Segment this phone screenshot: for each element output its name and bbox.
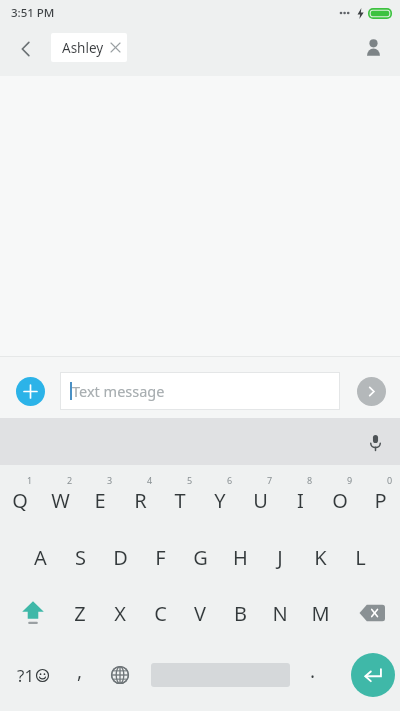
button[interactable]: M	[300, 590, 340, 636]
staticText: Q	[12, 487, 28, 514]
staticText: F	[155, 544, 166, 571]
button[interactable]: R	[120, 472, 160, 522]
button[interactable]: N	[260, 590, 300, 636]
staticText: 5	[187, 474, 193, 486]
button[interactable]: Back	[8, 31, 44, 67]
staticText: N	[272, 600, 288, 627]
staticText: 0	[387, 474, 393, 486]
staticText: H	[233, 544, 248, 571]
button[interactable]: I	[280, 472, 320, 522]
staticText: 8	[307, 474, 313, 486]
button[interactable]: Voice input	[358, 425, 392, 459]
staticText: O	[332, 487, 348, 514]
staticText: I	[297, 487, 304, 514]
staticText: U	[253, 487, 268, 514]
staticText: X	[114, 600, 126, 627]
staticText: ,	[77, 658, 83, 684]
staticText: 4	[147, 474, 153, 486]
button[interactable]: P	[360, 472, 400, 522]
button[interactable]: Y	[200, 472, 240, 522]
staticText: Ashley	[62, 39, 104, 57]
button[interactable]: L	[340, 534, 380, 580]
staticText: B	[234, 600, 247, 627]
button[interactable]: B	[220, 590, 260, 636]
staticText: M	[311, 600, 330, 627]
button[interactable]: Send	[357, 377, 386, 406]
staticText: Y	[214, 487, 226, 514]
staticText: V	[194, 600, 206, 627]
staticText: E	[94, 487, 106, 514]
button[interactable]: Add attachment	[16, 377, 45, 406]
button[interactable]: Backspace	[350, 590, 394, 636]
button[interactable]: Q	[0, 472, 40, 522]
button[interactable]: Enter	[351, 653, 395, 697]
button[interactable]: J	[260, 534, 300, 580]
staticText: 7	[267, 474, 273, 486]
staticText: D	[113, 544, 128, 571]
button[interactable]: .	[297, 653, 329, 697]
staticText: L	[355, 544, 366, 571]
button[interactable]: K	[300, 534, 340, 580]
button[interactable]: O	[320, 472, 360, 522]
staticText: G	[193, 544, 208, 571]
button[interactable]: F	[140, 534, 180, 580]
staticText: 9	[347, 474, 353, 486]
staticText: S	[75, 544, 86, 571]
staticText: Z	[74, 600, 86, 627]
button[interactable]: S	[60, 534, 100, 580]
staticText: 3	[107, 474, 113, 486]
staticText: R	[134, 487, 147, 514]
button[interactable]: D	[100, 534, 140, 580]
button[interactable]: W	[40, 472, 80, 522]
staticText: P	[374, 487, 387, 514]
button[interactable]: Text message	[60, 372, 340, 410]
button[interactable]: C	[140, 590, 180, 636]
staticText: A	[34, 544, 47, 571]
button[interactable]: Change language	[102, 653, 138, 697]
button[interactable]: Ashley	[51, 33, 127, 62]
button[interactable]: G	[180, 534, 220, 580]
button[interactable]: T	[160, 472, 200, 522]
staticText: C	[154, 600, 167, 627]
staticText: ?1	[17, 664, 35, 687]
button[interactable]: ,	[62, 653, 98, 697]
button[interactable]: A	[20, 534, 60, 580]
button[interactable]: U	[240, 472, 280, 522]
staticText: 2	[67, 474, 73, 486]
button[interactable]: Shift	[9, 590, 57, 636]
staticText: K	[314, 544, 327, 571]
staticText: 1	[27, 474, 33, 486]
button[interactable]: ?1	[9, 653, 57, 697]
staticText: J	[277, 544, 283, 571]
staticText: 3:51 PM	[11, 5, 55, 21]
staticText: T	[174, 487, 186, 514]
button[interactable]: X	[100, 590, 140, 636]
staticText: W	[51, 487, 70, 514]
button[interactable]: E	[80, 472, 120, 522]
button[interactable]: Contacts	[355, 29, 391, 65]
button[interactable]: V	[180, 590, 220, 636]
staticText: .	[310, 658, 316, 684]
staticText: 6	[227, 474, 233, 486]
button[interactable]: Z	[60, 590, 100, 636]
staticText: Text message	[72, 381, 165, 401]
button[interactable]: H	[220, 534, 260, 580]
